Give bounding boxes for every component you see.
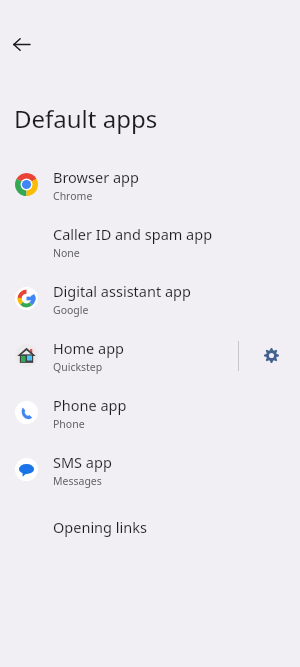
button[interactable]: SMS app <box>0 441 300 498</box>
button[interactable]: Home app <box>0 327 300 384</box>
button[interactable]: Browser app <box>0 156 300 213</box>
staticText: Default apps <box>14 102 158 135</box>
staticText: SMS app <box>53 452 112 472</box>
staticText: Chrome <box>53 189 93 203</box>
button[interactable]: Home app settings <box>243 327 300 384</box>
staticText: Browser app <box>53 167 139 187</box>
staticText: None <box>53 246 80 260</box>
staticText: Home app <box>53 338 124 358</box>
staticText: Quickstep <box>53 360 103 374</box>
staticText: Caller ID and spam app <box>53 224 213 244</box>
button[interactable]: Digital assistant app <box>0 270 300 327</box>
staticText: Google <box>53 303 89 317</box>
staticText: Phone <box>53 417 85 431</box>
button[interactable]: Back <box>5 28 37 60</box>
staticText: Digital assistant app <box>53 281 191 301</box>
button[interactable]: Caller ID and spam app <box>0 213 300 270</box>
button[interactable]: Opening links <box>0 498 300 555</box>
button[interactable]: Phone app <box>0 384 300 441</box>
staticText: Opening links <box>53 517 147 537</box>
staticText: Messages <box>53 474 102 488</box>
staticText: Phone app <box>53 395 127 415</box>
